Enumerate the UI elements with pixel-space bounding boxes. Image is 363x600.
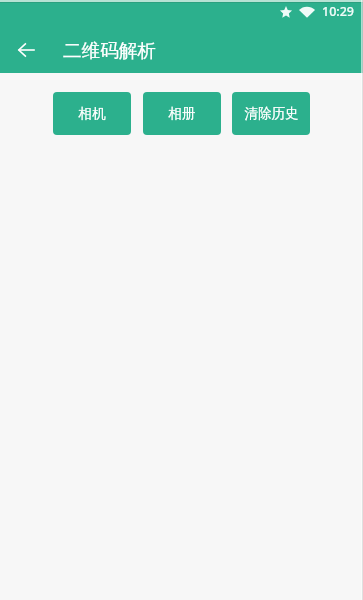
- button[interactable]: Back: [11, 35, 41, 65]
- button[interactable]: 清除历史: [232, 92, 310, 135]
- button[interactable]: 相机: [53, 92, 131, 135]
- button[interactable]: 相册: [143, 92, 221, 135]
- staticText: 相册: [168, 105, 196, 122]
- staticText: 清除历史: [244, 105, 299, 122]
- staticText: 相机: [78, 105, 106, 122]
- staticText: 10:29: [322, 3, 355, 20]
- staticText: 二维码解析: [63, 39, 156, 62]
